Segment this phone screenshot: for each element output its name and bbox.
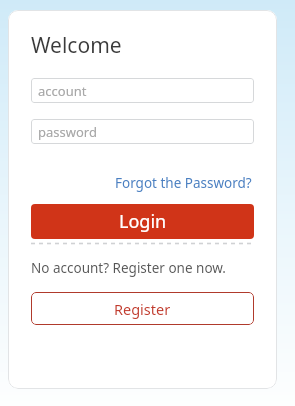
staticText: Forgot the Password?: [115, 174, 252, 192]
staticText: Welcome: [31, 31, 122, 60]
staticText: Register: [114, 299, 171, 319]
button[interactable]: Login: [31, 204, 254, 239]
button[interactable]: Register: [31, 292, 254, 325]
staticText: password: [38, 123, 97, 141]
button[interactable]: Forgot the Password?: [113, 173, 254, 193]
staticText: No account? Register one now.: [31, 259, 226, 277]
staticText: account: [38, 82, 87, 100]
staticText: Login: [119, 209, 167, 234]
button[interactable]: password: [31, 119, 254, 144]
button[interactable]: account: [31, 78, 254, 103]
